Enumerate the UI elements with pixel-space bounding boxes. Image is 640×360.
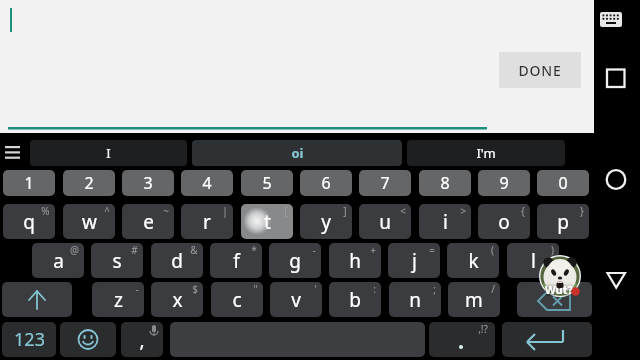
button[interactable]: j: [388, 243, 440, 278]
button[interactable]: g: [269, 243, 321, 278]
button[interactable]: [598, 8, 626, 32]
staticText: s: [112, 248, 122, 274]
button[interactable]: ,!?: [429, 322, 495, 357]
button[interactable]: [0, 0, 594, 133]
button[interactable]: y: [300, 204, 352, 239]
staticText: >: [460, 204, 466, 218]
button[interactable]: ,: [121, 322, 163, 357]
button[interactable]: I: [30, 140, 187, 166]
staticText: 9: [499, 172, 509, 194]
button[interactable]: s: [91, 243, 143, 278]
button[interactable]: x: [151, 282, 203, 317]
staticText: =: [429, 243, 435, 257]
staticText: <: [400, 204, 406, 218]
button[interactable]: 8: [419, 170, 471, 196]
button[interactable]: [604, 264, 632, 292]
staticText: i: [443, 209, 448, 235]
staticText: ': [314, 282, 317, 296]
staticText: |: [222, 204, 228, 218]
button[interactable]: 0: [537, 170, 589, 196]
staticText: u: [379, 209, 391, 235]
staticText: y: [321, 209, 331, 235]
staticText: o: [498, 209, 510, 235]
button[interactable]: b: [329, 282, 381, 317]
button[interactable]: a: [32, 243, 84, 278]
button[interactable]: i: [419, 204, 471, 239]
button[interactable]: d: [151, 243, 203, 278]
staticText: 8: [440, 172, 450, 194]
button[interactable]: t: [241, 204, 293, 239]
button[interactable]: c: [211, 282, 263, 317]
button[interactable]: [502, 322, 592, 357]
button[interactable]: m: [448, 282, 500, 317]
staticText: +: [370, 243, 376, 257]
button[interactable]: 1: [3, 170, 55, 196]
staticText: ^: [104, 204, 110, 218]
button[interactable]: 2: [63, 170, 115, 196]
staticText: ~: [163, 204, 169, 218]
staticText: 3: [143, 172, 153, 194]
button[interactable]: DONE: [499, 52, 581, 88]
staticText: I: [106, 144, 111, 162]
staticText: @: [70, 243, 79, 257]
staticText: #: [131, 243, 138, 257]
staticText: /: [491, 282, 495, 296]
button[interactable]: 123: [2, 322, 56, 357]
button[interactable]: o: [478, 204, 530, 239]
button[interactable]: [604, 64, 630, 90]
staticText: 1: [24, 172, 34, 194]
staticText: a: [53, 248, 64, 274]
staticText: ): [551, 243, 554, 257]
button[interactable]: u: [359, 204, 411, 239]
button[interactable]: r: [181, 204, 233, 239]
staticText: t: [264, 209, 271, 235]
staticText: n: [409, 287, 421, 313]
staticText: b: [349, 287, 361, 313]
staticText: (: [491, 243, 494, 257]
button[interactable]: 7: [359, 170, 411, 196]
button[interactable]: w: [63, 204, 115, 239]
staticText: e: [143, 209, 154, 235]
staticText: k: [468, 248, 479, 274]
button[interactable]: z: [92, 282, 144, 317]
button[interactable]: q: [3, 204, 55, 239]
button[interactable]: k: [447, 243, 499, 278]
button[interactable]: [517, 282, 592, 317]
button[interactable]: n: [389, 282, 441, 317]
staticText: oi: [291, 144, 304, 162]
button[interactable]: oi: [192, 140, 402, 166]
button[interactable]: f: [210, 243, 262, 278]
button[interactable]: e: [122, 204, 174, 239]
button[interactable]: v: [270, 282, 322, 317]
button[interactable]: [60, 322, 116, 357]
button[interactable]: [2, 282, 72, 317]
button[interactable]: 9: [478, 170, 530, 196]
button[interactable]: 5: [241, 170, 293, 196]
staticText: ]: [343, 204, 347, 218]
staticText: r: [203, 209, 211, 235]
button[interactable]: l: [507, 243, 559, 278]
staticText: p: [557, 209, 569, 235]
button[interactable]: 6: [300, 170, 352, 196]
button[interactable]: h: [329, 243, 381, 278]
button[interactable]: I'm: [407, 140, 565, 166]
button[interactable]: p: [537, 204, 589, 239]
staticText: q: [23, 209, 35, 235]
button[interactable]: [606, 166, 634, 194]
staticText: v: [291, 287, 301, 313]
staticText: Wut?: [545, 282, 573, 296]
button[interactable]: 4: [181, 170, 233, 196]
staticText: c: [232, 287, 242, 313]
staticText: l: [531, 248, 536, 274]
staticText: w: [82, 209, 97, 235]
staticText: &: [190, 243, 198, 257]
staticText: :: [373, 282, 376, 296]
staticText: ": [253, 282, 258, 296]
staticText: g: [289, 248, 301, 274]
staticText: -: [135, 282, 139, 296]
staticText: 5: [262, 172, 272, 194]
staticText: d: [171, 248, 183, 274]
staticText: ,!?: [478, 322, 488, 336]
button[interactable]: 3: [122, 170, 174, 196]
